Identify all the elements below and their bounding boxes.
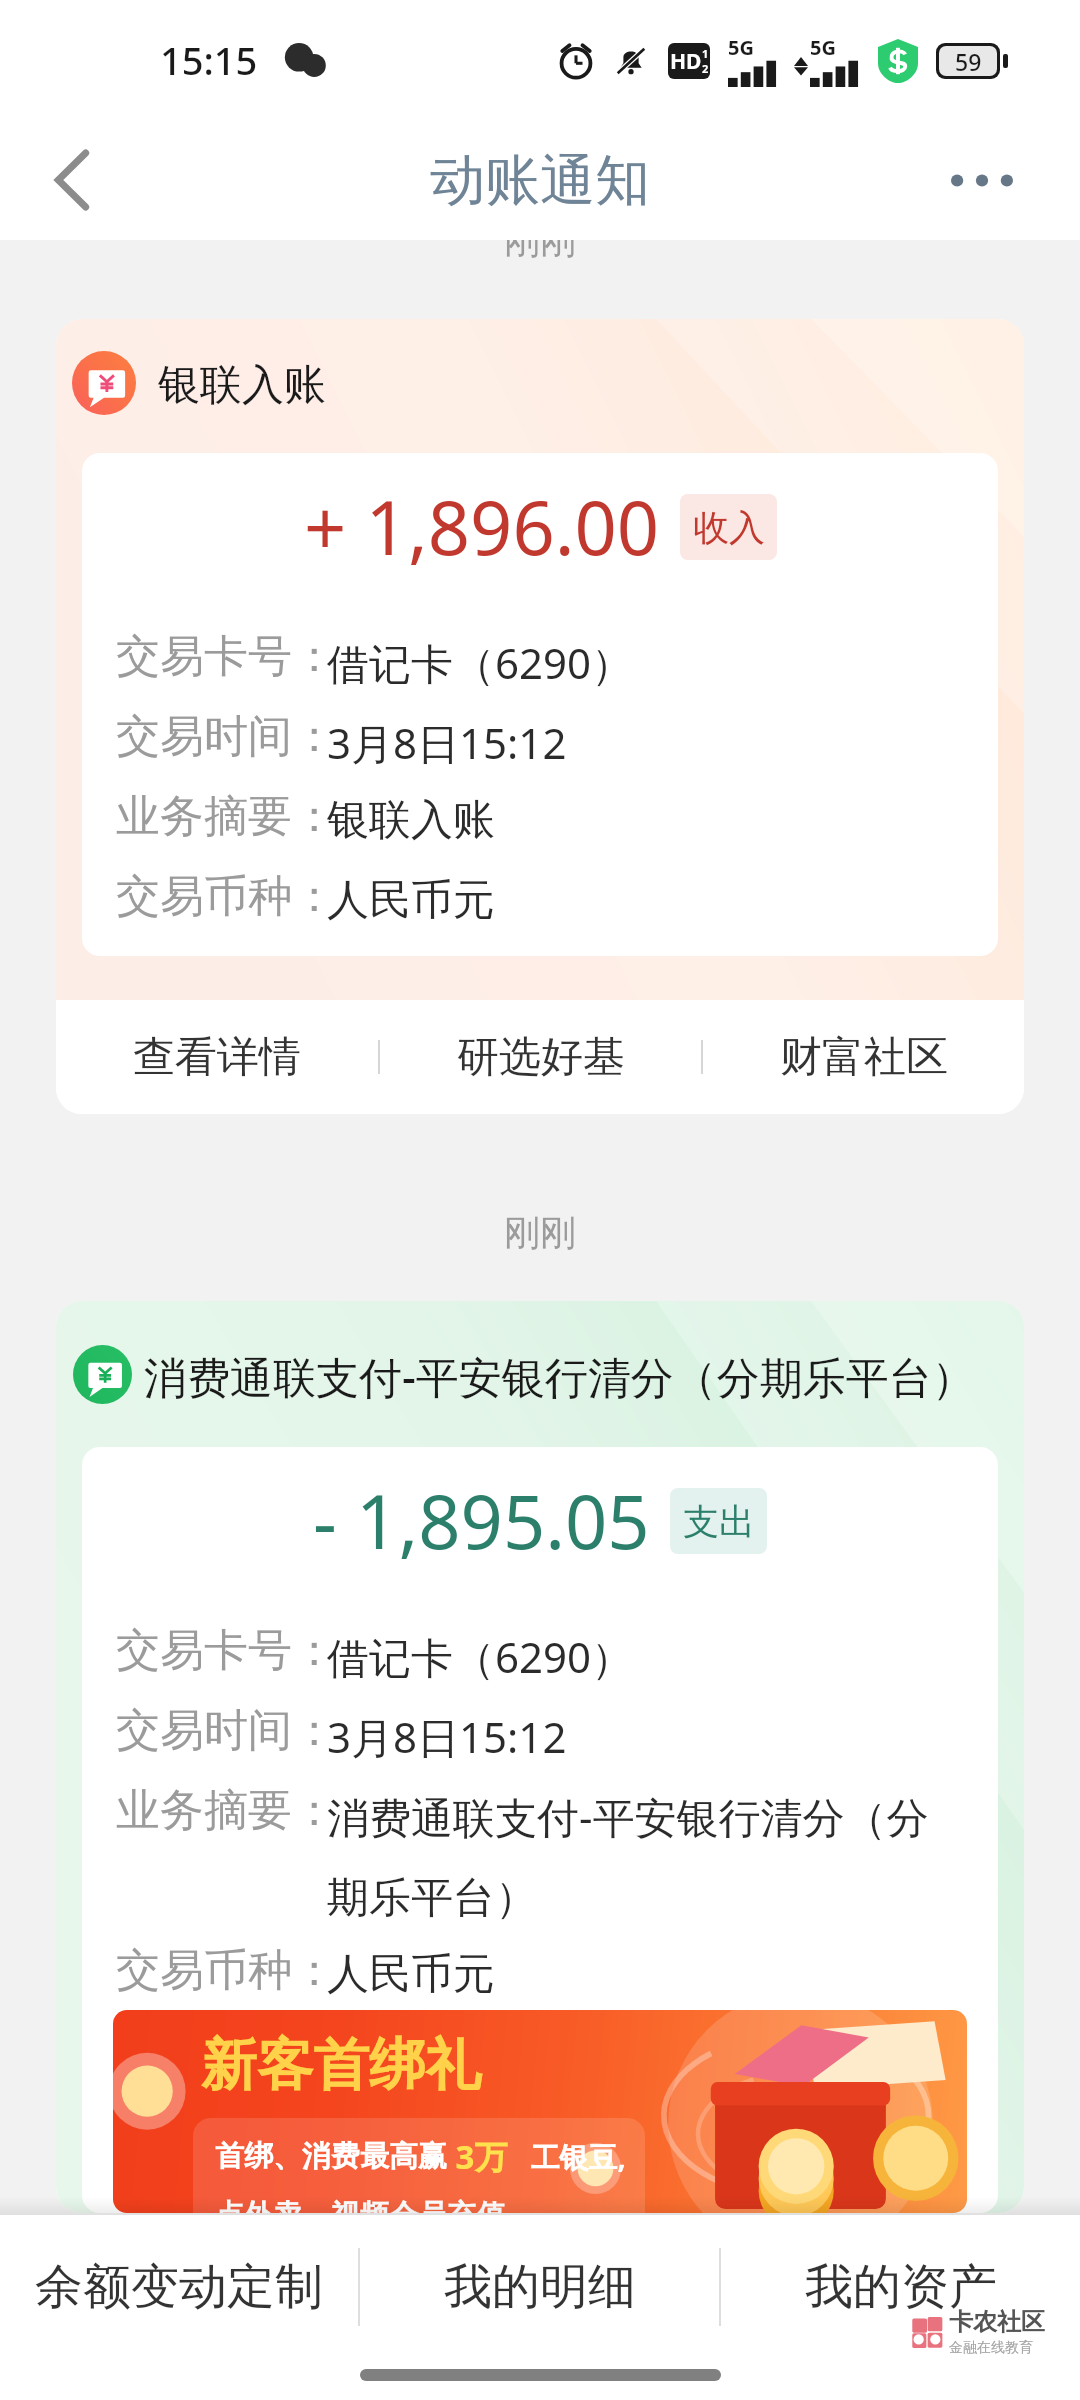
staticText: 银联入账 xyxy=(327,794,495,847)
staticText: 点外卖、视频会员充值、 xyxy=(215,2197,534,2213)
staticText: 5G xyxy=(728,34,754,61)
staticText: 借记卡（6290） xyxy=(327,634,634,691)
staticText: 59 xyxy=(955,46,982,76)
button[interactable]: Back xyxy=(30,138,114,222)
staticText: 卡农社区 xyxy=(949,2307,1045,2337)
staticText: 交易时间： xyxy=(116,709,336,764)
button[interactable]: 余额变动定制 xyxy=(0,2244,358,2329)
staticText: 支出 xyxy=(683,1499,755,1544)
staticText: 动账通知 xyxy=(430,146,650,215)
staticText: 人民币元 xyxy=(327,874,495,927)
button[interactable]: 银联入账 xyxy=(56,319,1024,1114)
staticText: 5G xyxy=(810,34,836,61)
staticText: 刚刚 xyxy=(0,218,1080,263)
staticText: 2 xyxy=(702,61,709,76)
button[interactable]: 研选好基 xyxy=(380,1000,701,1114)
button[interactable]: 我的明细 xyxy=(360,2244,719,2329)
staticText: - 1,895.05 xyxy=(313,1470,650,1571)
staticText: HD xyxy=(670,47,702,76)
staticText: 我的资产 xyxy=(805,2257,997,2317)
staticText: 交易币种： xyxy=(116,869,336,924)
staticText: 15:15 xyxy=(160,34,258,86)
staticText: 交易币种： xyxy=(116,1943,336,1998)
staticText: 交易卡号： xyxy=(116,629,336,684)
staticText: 首绑、消费最高赢 xyxy=(215,2138,447,2175)
staticText: 金融在线教育 xyxy=(949,2339,1033,2357)
staticText: 3万 xyxy=(447,2134,508,2179)
staticText: 人民币元 xyxy=(327,1948,495,2001)
staticText: 工银豆, xyxy=(508,2137,626,2177)
staticText: 1 xyxy=(702,46,709,61)
staticText: + 1,896.00 xyxy=(304,476,660,577)
staticText: 刚刚 xyxy=(0,1210,1080,1255)
staticText: 收入 xyxy=(693,505,765,550)
staticText: 我的明细 xyxy=(444,2257,636,2317)
staticText: 3月8日15:12 xyxy=(327,714,567,771)
staticText: 交易时间： xyxy=(116,1703,336,1758)
staticText: 交易卡号： xyxy=(116,1623,336,1678)
staticText: 借记卡（6290） xyxy=(327,1628,634,1685)
staticText: 银联入账 xyxy=(158,359,326,412)
staticText: 研选好基 xyxy=(457,1031,625,1084)
staticText: 财富社区 xyxy=(780,1031,948,1084)
staticText: 余额变动定制 xyxy=(35,2257,323,2317)
button[interactable]: 查看详情 xyxy=(56,1000,378,1114)
button[interactable]: More options xyxy=(940,138,1024,222)
staticText: 查看详情 xyxy=(133,1031,301,1084)
staticText: 3月8日15:12 xyxy=(327,1708,567,1765)
staticText: 业务摘要： xyxy=(116,789,336,844)
button[interactable]: 消费通联支付-平安银行清分（分期乐平台） xyxy=(56,1301,1024,2213)
staticText: 新客首绑礼 xyxy=(201,2030,481,2101)
button[interactable]: 财富社区 xyxy=(703,1000,1024,1114)
staticText: 业务摘要： xyxy=(116,1783,336,1838)
staticText: 消费通联支付-平安银行清分（分期乐平台） xyxy=(144,1347,975,1406)
staticText: 消费通联支付-平安银行清分（分 期乐平台） xyxy=(327,1788,929,1924)
button[interactable]: 我的资产 xyxy=(721,2244,1080,2329)
button[interactable]: 新客首绑礼 promotion banner xyxy=(113,2010,967,2213)
